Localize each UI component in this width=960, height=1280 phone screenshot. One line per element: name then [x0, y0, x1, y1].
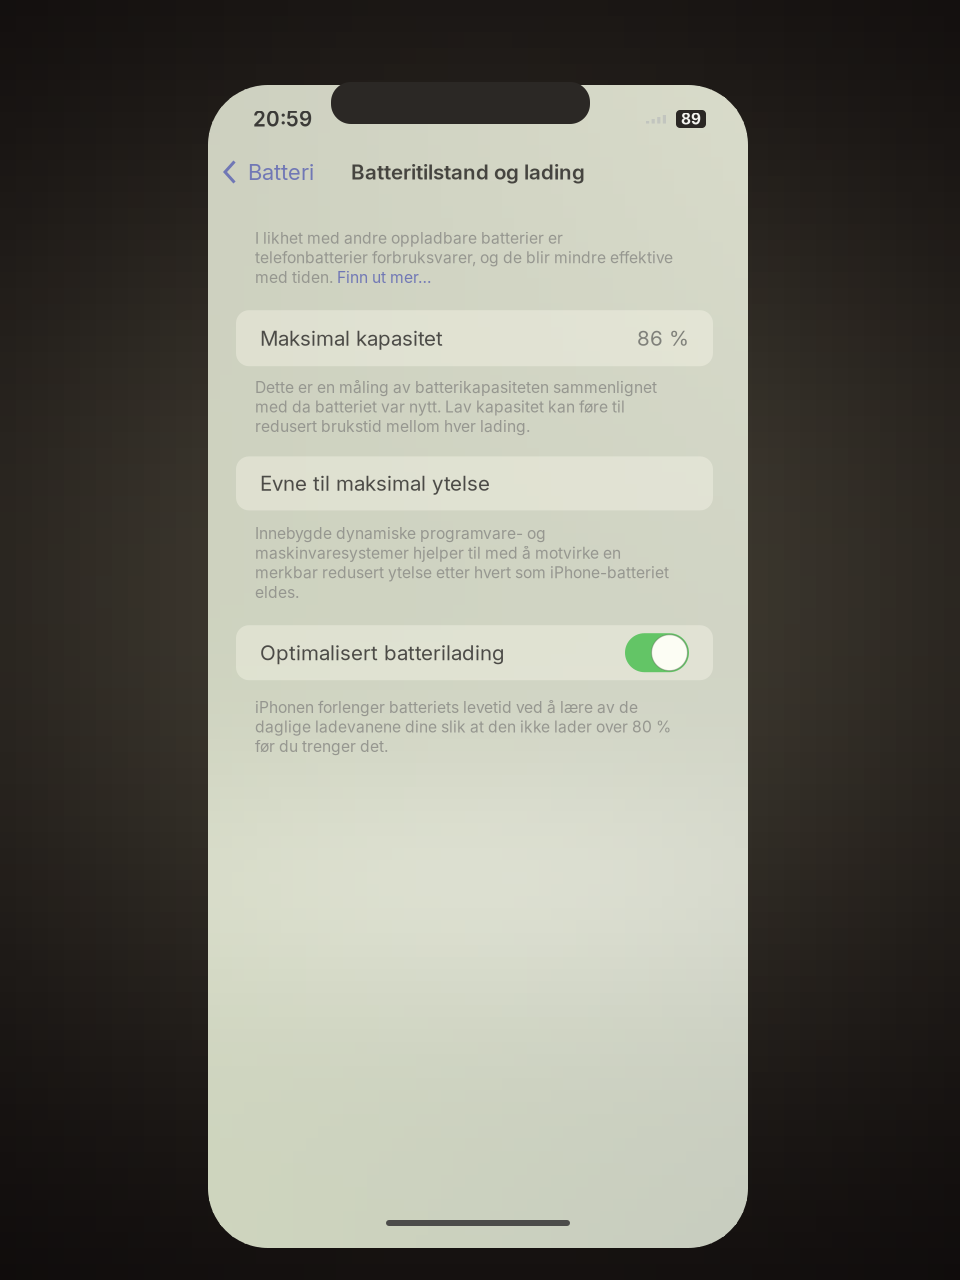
staticText: Batteritilstand og lading — [351, 160, 585, 184]
staticText: Batteri — [248, 159, 314, 185]
staticText: eldes. — [255, 583, 299, 602]
staticText: iPhonen forlenger batteriets levetid ved… — [255, 698, 638, 717]
button[interactable]: Finn ut mer… — [337, 268, 431, 287]
staticText: 86 % — [637, 326, 689, 351]
staticText: Optimalisert batterilading — [260, 640, 505, 665]
staticText: Finn ut mer… — [337, 268, 431, 287]
staticText: med da batteriet var nytt. Lav kapasitet… — [255, 397, 625, 416]
staticText: med tiden. — [255, 268, 337, 287]
staticText: Innebygde dynamiske programvare- og — [255, 524, 546, 543]
staticText: 20:59 — [253, 106, 312, 131]
staticText: Dette er en måling av batterikapasiteten… — [255, 378, 657, 397]
staticText: telefonbatterier forbruksvarer, og de bl… — [255, 248, 673, 267]
staticText: Evne til maksimal ytelse — [260, 471, 490, 496]
button[interactable]: Optimalisert batterilading — [625, 633, 689, 672]
staticText: daglige ladevanene dine slik at den ikke… — [255, 717, 671, 736]
staticText: redusert brukstid mellom hver lading. — [255, 417, 530, 436]
staticText: 89 — [681, 110, 701, 128]
staticText: merkbar redusert ytelse etter hvert som … — [255, 563, 669, 582]
staticText: maskinvaresystemer hjelper til med å mot… — [255, 544, 621, 562]
staticText: I likhet med andre oppladbare batterier … — [255, 229, 563, 247]
button[interactable]: Batteri — [208, 151, 314, 193]
staticText: Maksimal kapasitet — [260, 326, 443, 351]
staticText: før du trenger det. — [255, 737, 388, 756]
button[interactable]: Evne til maksimal ytelse — [208, 456, 713, 510]
